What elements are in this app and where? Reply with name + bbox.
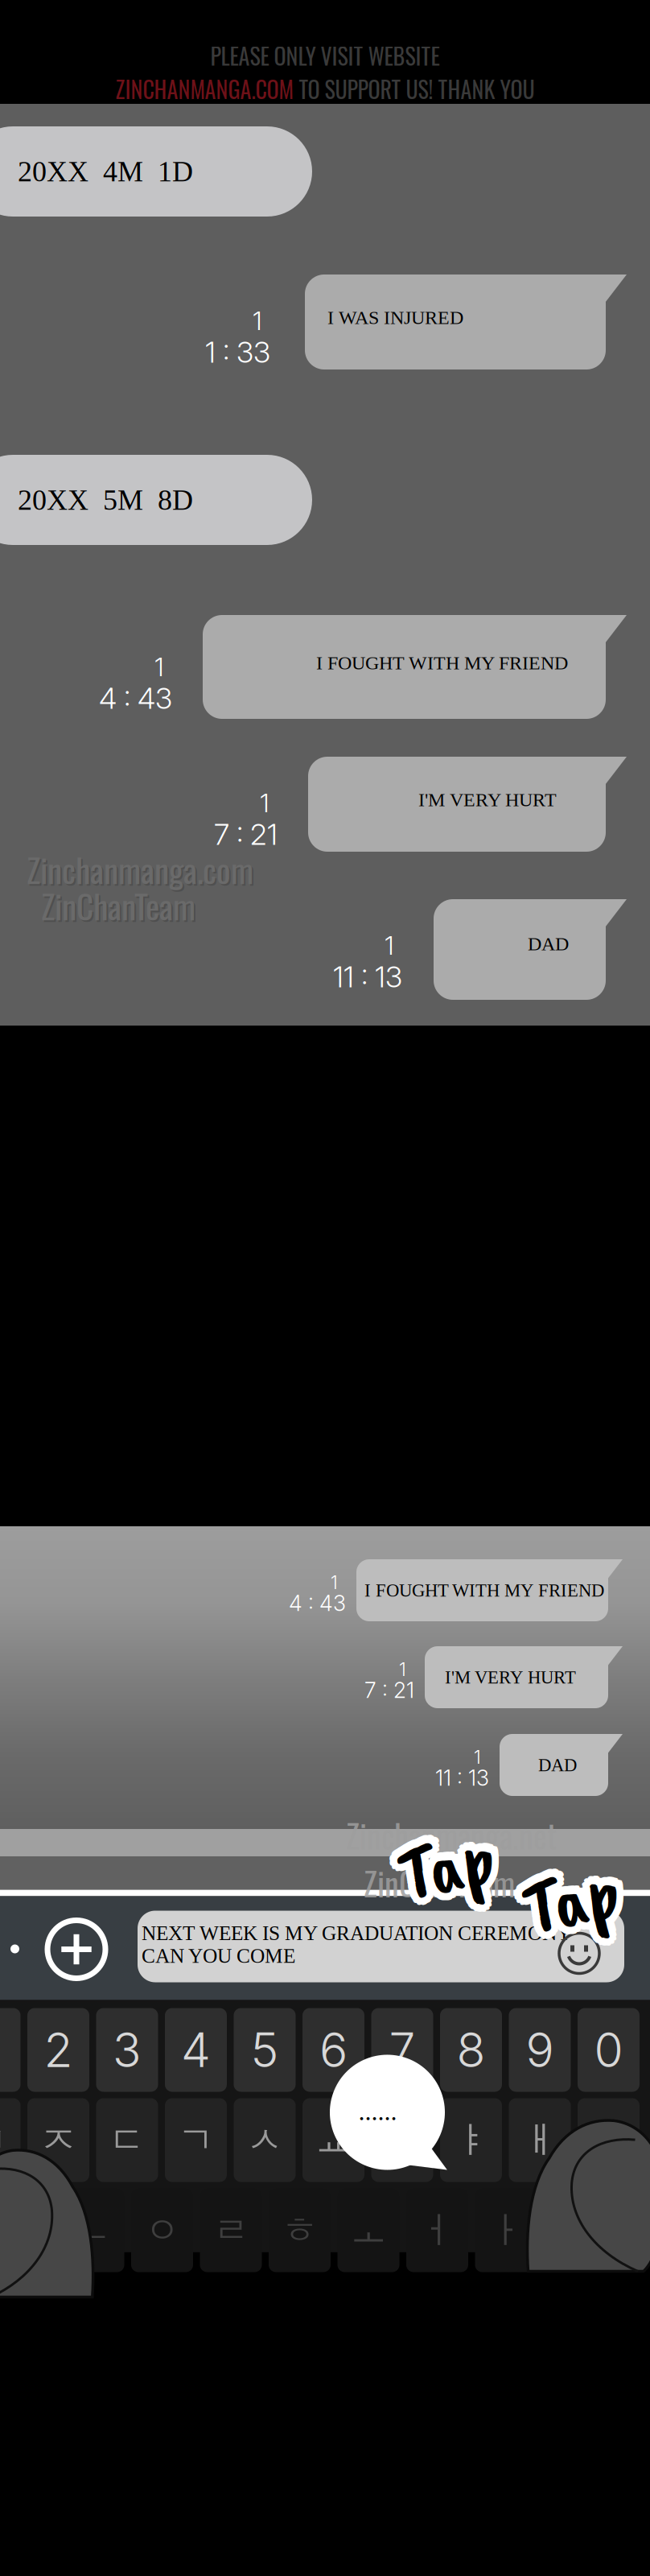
staticText: I FOUGHT WITH MY FRIEND — [316, 652, 568, 673]
button[interactable]: ㄷ — [96, 2098, 158, 2182]
button[interactable]: ㄹ — [200, 2188, 262, 2272]
button[interactable]: I'M VERY HURT — [308, 757, 627, 852]
staticText: ㅐ — [522, 2117, 558, 2163]
staticText: Tap — [516, 1855, 613, 1953]
staticText: 20XX 4M 1D — [18, 155, 193, 188]
staticText: 8 — [457, 2021, 485, 2079]
staticText: Tap — [527, 1858, 623, 1955]
button[interactable]: 9 — [509, 2008, 571, 2092]
button[interactable]: 8 — [440, 2008, 502, 2092]
staticText: 4 : 43 — [99, 681, 172, 716]
staticText: Zinchanmanga.com — [27, 844, 253, 894]
staticText: Tap — [523, 1843, 619, 1940]
button[interactable]: ㄱ — [165, 2098, 227, 2182]
staticText: Tap — [529, 1855, 626, 1953]
button[interactable]: 4 — [165, 2008, 227, 2092]
button[interactable]: ㅣ — [544, 2188, 606, 2272]
staticText: 3 — [113, 2021, 142, 2079]
staticText: Tap — [405, 1818, 502, 1915]
button[interactable]: NEXT WEEK IS MY GRADUATION CEREMONY — [138, 1911, 624, 1982]
button[interactable]: Emoji — [559, 1933, 599, 1973]
staticText: Tap — [391, 1814, 488, 1911]
button[interactable]: DAD — [434, 899, 627, 1000]
button[interactable]: ㅂ — [0, 2098, 21, 2182]
staticText: ㄴ — [75, 2207, 111, 2253]
button[interactable]: 5 — [234, 2008, 296, 2092]
staticText: ㅑ — [453, 2117, 489, 2163]
staticText: 20XX 5M 8D — [18, 484, 193, 516]
staticText: 4 — [181, 2021, 211, 2079]
staticText: 1 — [399, 1658, 406, 1680]
button[interactable]: ㅑ — [440, 2098, 502, 2182]
button[interactable]: I WAS INJURED — [305, 275, 627, 369]
button[interactable]: ㅔ — [578, 2098, 640, 2182]
button[interactable]: ㅏ — [475, 2188, 537, 2272]
staticText: ㄹ — [213, 2207, 249, 2253]
staticText: ZinChanTeam — [43, 882, 197, 932]
button[interactable]: ㅁ — [0, 2188, 56, 2272]
button[interactable]: 3 — [96, 2008, 158, 2092]
button[interactable]: I FOUGHT WITH MY FRIEND — [203, 615, 627, 719]
button[interactable]: 2 — [27, 2008, 89, 2092]
staticText: ㅗ — [350, 2207, 387, 2253]
staticText: Tap — [519, 1844, 615, 1942]
staticText: Tap — [392, 1822, 488, 1919]
staticText: DAD — [538, 1755, 577, 1775]
staticText: 0 — [594, 2021, 623, 2079]
staticText: Zinchanmanga.com — [28, 846, 255, 895]
staticText: ㅕ — [384, 2117, 420, 2163]
button[interactable]: ㅓ — [406, 2188, 468, 2272]
staticText: ㅅ — [247, 2117, 283, 2163]
button[interactable]: Add attachment — [47, 1920, 105, 1978]
button[interactable]: ㅅ — [234, 2098, 296, 2182]
staticText: ㅔ — [590, 2117, 627, 2163]
staticText: 1 : 33 — [205, 335, 270, 370]
staticText: 1 — [154, 651, 164, 682]
button[interactable]: I FOUGHT WITH MY FRIEND — [356, 1559, 623, 1621]
staticText: ㅇ — [144, 2207, 180, 2253]
button[interactable]: ㅎ — [269, 2188, 331, 2272]
staticText: 1 — [385, 930, 394, 961]
button[interactable]: ㅈ — [27, 2098, 89, 2182]
button[interactable]: I'M VERY HURT — [425, 1646, 623, 1708]
staticText: Tap — [531, 1847, 627, 1944]
button[interactable]: 0 — [578, 2008, 640, 2092]
staticText: 1 — [331, 1571, 338, 1593]
staticText: CAN YOU COME — [142, 1945, 295, 1967]
staticText: Tap — [523, 1859, 619, 1956]
staticText: ㅓ — [419, 2207, 455, 2253]
staticText: 5 — [251, 2021, 279, 2079]
staticText: Tap — [527, 1844, 624, 1941]
button[interactable]: ㅐ — [509, 2098, 571, 2182]
staticText: 4 : 43 — [289, 1590, 346, 1616]
button[interactable]: 20XX 5M 8D — [0, 455, 312, 545]
staticText: Tap — [523, 1851, 619, 1949]
button[interactable]: ㄴ — [62, 2188, 124, 2272]
staticText: Tap — [403, 1810, 499, 1907]
staticText: DAD — [528, 933, 569, 954]
button[interactable]: DAD — [500, 1734, 623, 1796]
staticText: Tap — [390, 1818, 487, 1915]
staticText: 1 — [253, 305, 262, 336]
button[interactable]: ㅕ — [371, 2098, 433, 2182]
button[interactable]: ㅛ — [302, 2098, 364, 2182]
staticText: ZinChanTeam — [364, 1859, 515, 1907]
staticText: ...... — [359, 2097, 397, 2126]
button[interactable]: ㅇ — [131, 2188, 193, 2272]
staticText: ㅎ — [282, 2207, 318, 2253]
button[interactable]: 20XX 4M 1D — [0, 126, 312, 217]
staticText: 7 : 21 — [214, 817, 278, 852]
staticText: Tap — [394, 1811, 491, 1908]
button[interactable]: 6 — [302, 2008, 364, 2092]
staticText: ㅂ — [0, 2117, 8, 2163]
staticText: NEXT WEEK IS MY GRADUATION CEREMONY — [142, 1922, 571, 1945]
staticText: 1 — [474, 1746, 481, 1768]
staticText: ㅈ — [40, 2117, 76, 2163]
staticText: Tap — [519, 1858, 616, 1955]
staticText: Tap — [404, 1821, 501, 1919]
button[interactable]: 1 — [0, 2008, 21, 2092]
button[interactable]: ㅗ — [337, 2188, 399, 2272]
staticText: 2 — [44, 2021, 73, 2079]
button[interactable]: 7 — [371, 2008, 433, 2092]
staticText: Tap — [402, 1824, 498, 1921]
